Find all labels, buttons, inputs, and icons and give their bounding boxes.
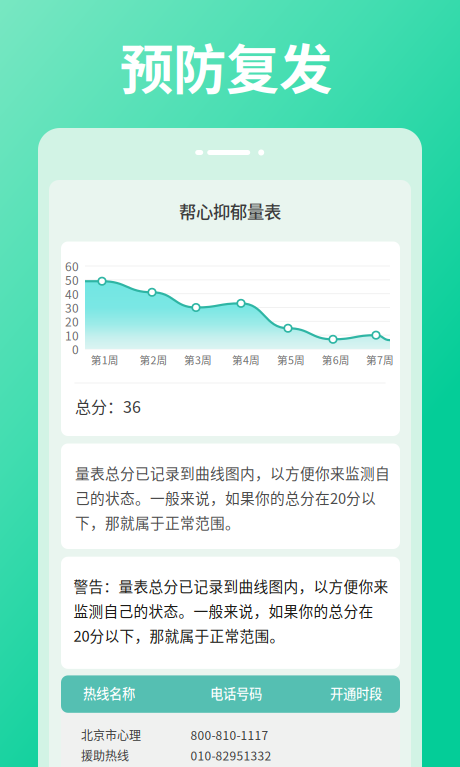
staticText: 30 (65, 299, 79, 316)
staticText: 20 (65, 313, 79, 330)
staticText: 40 (65, 285, 79, 302)
staticText: 预防复发 (120, 27, 332, 105)
staticText: 开通时段 (330, 683, 382, 703)
staticText: 第7周 (366, 352, 394, 367)
staticText: 10 (65, 326, 79, 344)
staticText: 第2周 (139, 352, 167, 367)
staticText: 总分：36 (75, 394, 141, 418)
staticText: 50 (65, 271, 79, 288)
staticText: 第5周 (277, 352, 305, 367)
staticText: 量表总分已记录到曲线图内，以方便你来监测自己的状态。一般来说，如果你的总分在20… (75, 462, 390, 533)
staticText: 第3周 (184, 352, 212, 367)
staticText: 第4周 (232, 352, 260, 367)
staticText: 第6周 (322, 352, 350, 367)
staticText: 800-810-1117 010-82951332 (190, 726, 271, 764)
staticText: 热线名称 (83, 683, 135, 703)
staticText: 帮心抑郁量表 (179, 198, 281, 224)
staticText: 0 (72, 340, 79, 358)
staticText: 60 (65, 257, 79, 275)
staticText: 第1周 (91, 352, 119, 367)
staticText: 北京市心理 援助热线 (81, 726, 141, 764)
staticText: 电话号码 (210, 683, 262, 703)
staticText: 警告：量表总分已记录到曲线图内，以方便你来监测自己的状态。一般来说，如果你的总分… (73, 575, 388, 646)
